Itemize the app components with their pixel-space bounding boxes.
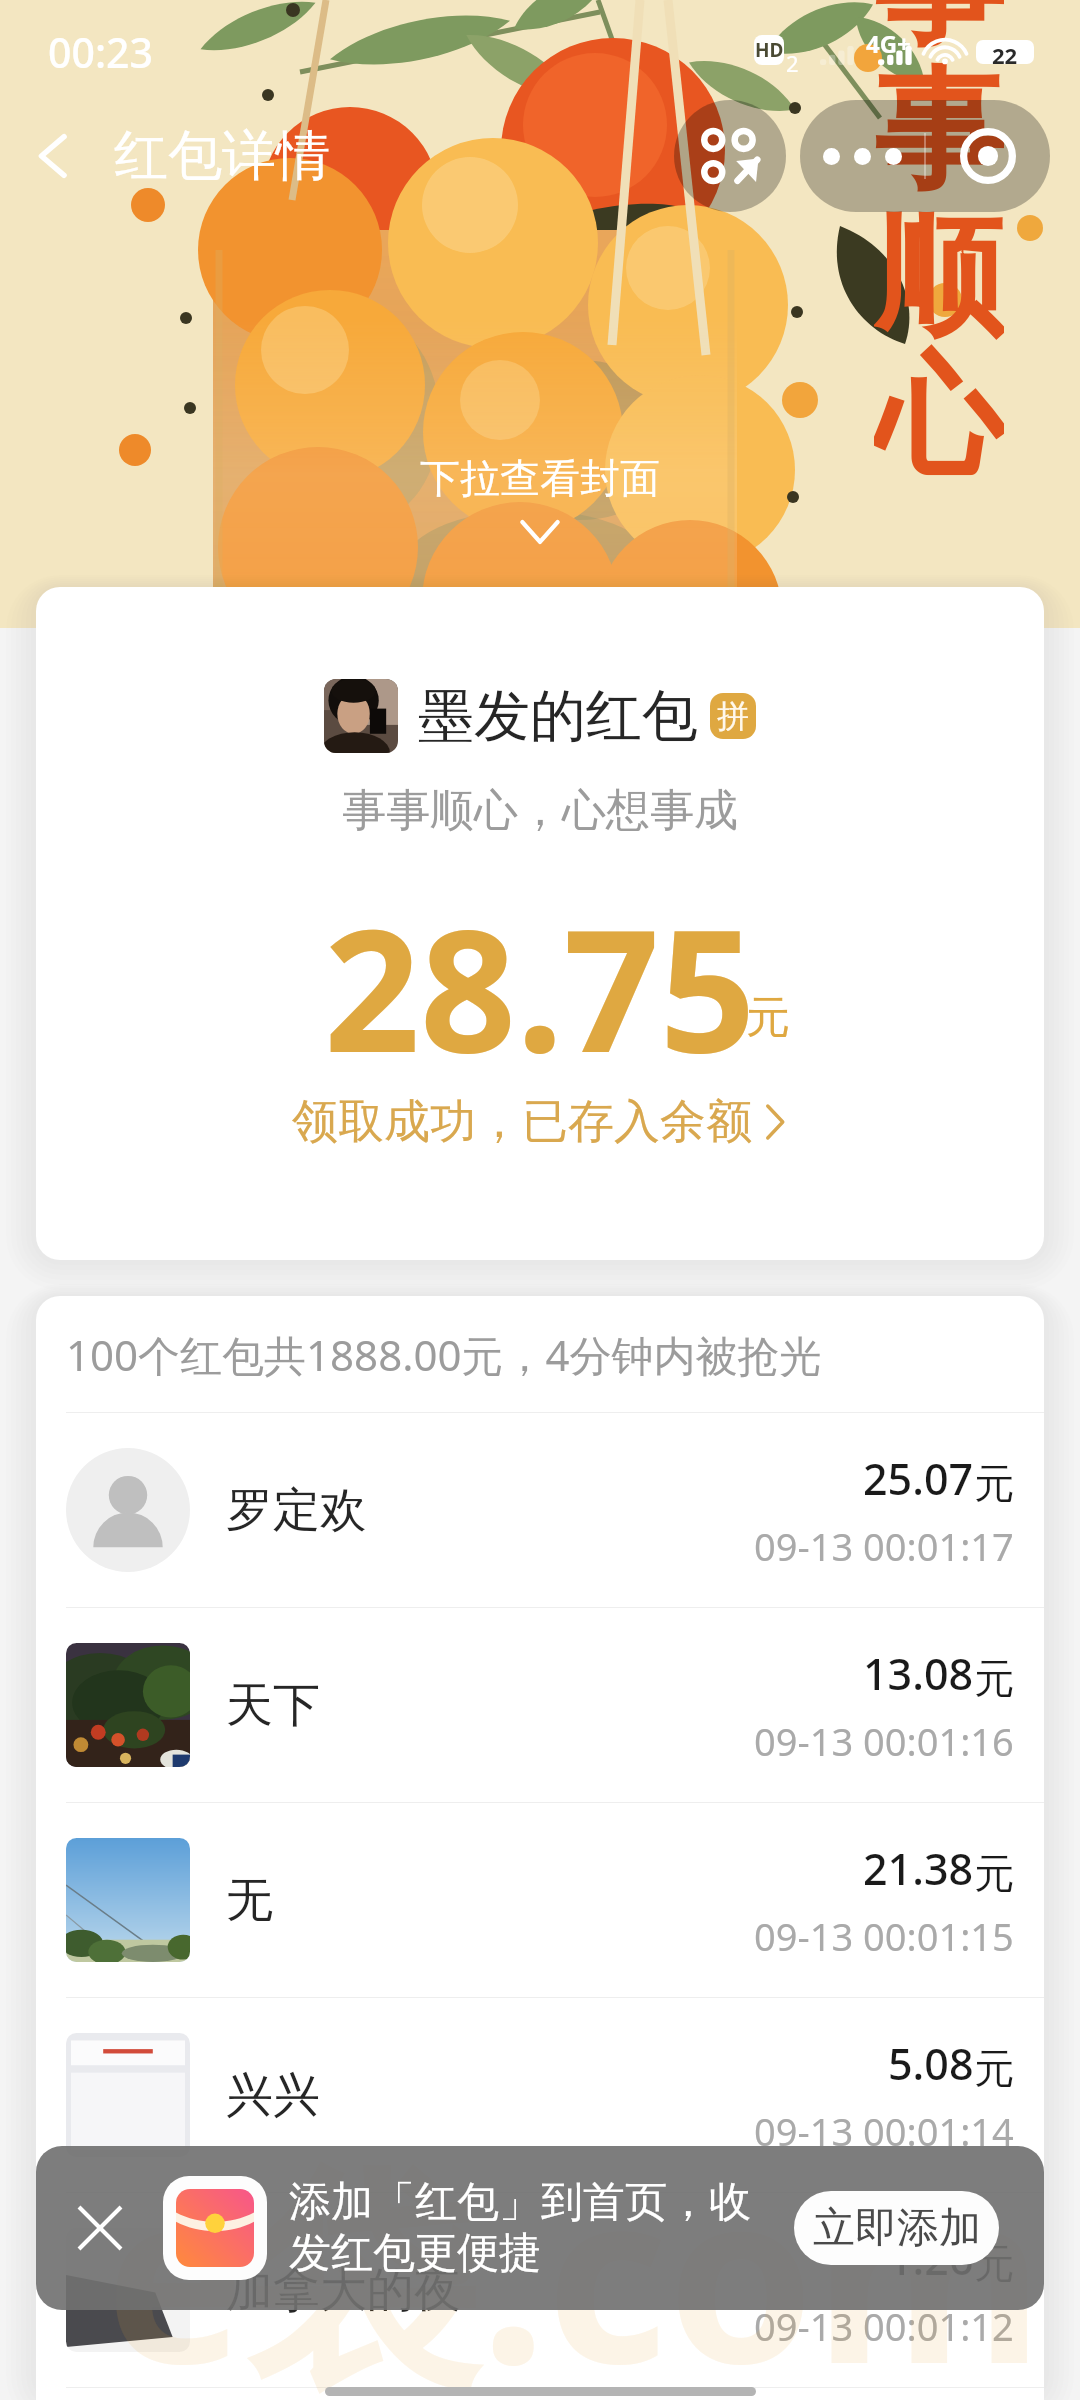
- staticText: 元: [746, 990, 790, 1045]
- staticText: 25.07: [863, 1449, 974, 1508]
- button[interactable]: 兴兴: [36, 1998, 1044, 2192]
- button[interactable]: 领取成功，已存入余额: [292, 1093, 788, 1151]
- staticText: 09-13 00:01:16: [754, 1715, 1014, 1767]
- staticText: 添加「红包」到首页，收 发红包更便捷: [289, 2176, 790, 2280]
- staticText: 拼: [717, 696, 749, 736]
- staticText: 事: [874, 0, 1004, 50]
- staticText: 天下: [226, 1676, 754, 1735]
- staticText: 00:23: [48, 24, 153, 80]
- staticText: 元: [974, 1848, 1014, 1898]
- button[interactable]: Mini program: [674, 100, 786, 212]
- button[interactable]: 罗定欢: [36, 1413, 1044, 1607]
- staticText: 21.38: [863, 1839, 974, 1898]
- staticText: 罗定欢: [226, 1481, 754, 1540]
- button[interactable]: More: [800, 100, 924, 212]
- staticText: 墨发的红包: [418, 681, 698, 752]
- staticText: 09-13 00:01:12: [754, 2300, 1014, 2352]
- staticText: 2: [786, 48, 799, 78]
- staticText: 5.08: [888, 2034, 974, 2093]
- staticText: 红包详情: [114, 122, 330, 190]
- staticText: 立即添加: [813, 2202, 981, 2255]
- staticText: 兴兴: [226, 2066, 754, 2125]
- staticText: 顺: [874, 196, 1004, 340]
- button[interactable]: Back: [0, 102, 108, 210]
- button[interactable]: Dismiss: [36, 2146, 163, 2310]
- button[interactable]: Close: [926, 100, 1050, 212]
- staticText: 事: [874, 50, 1004, 194]
- button[interactable]: 无: [36, 1803, 1044, 1997]
- staticText: 09-13 00:01:17: [754, 1520, 1014, 1572]
- button[interactable]: 加拿大的夜: [36, 2193, 1044, 2387]
- staticText: 100个红包共1888.00元，4分钟内被抢光: [66, 1326, 822, 1383]
- button[interactable]: 下拉查看封面: [420, 453, 660, 503]
- staticText: e袋.com: [105, 2112, 1044, 2400]
- button[interactable]: 天下: [36, 1608, 1044, 1802]
- staticText: 4G+: [866, 27, 911, 60]
- staticText: 13.08: [863, 1644, 974, 1703]
- staticText: 09-13 00:01:14: [754, 2105, 1014, 2157]
- staticText: 元: [974, 2043, 1014, 2093]
- staticText: 无: [226, 1871, 754, 1930]
- staticText: HD: [755, 37, 784, 63]
- staticText: 09-13 00:01:15: [754, 1910, 1014, 1962]
- staticText: 元: [974, 1653, 1014, 1703]
- staticText: 元: [974, 2238, 1014, 2288]
- staticText: 心: [874, 336, 1004, 480]
- staticText: 22: [992, 40, 1018, 64]
- staticText: 1.26: [888, 2229, 974, 2288]
- staticText: 事事顺心，心想事成: [342, 783, 738, 838]
- button[interactable]: 立即添加: [794, 2191, 999, 2265]
- staticText: 元: [974, 1458, 1014, 1508]
- staticText: 28.75: [324, 872, 756, 1101]
- staticText: 领取成功，已存入余额: [292, 1093, 752, 1151]
- staticText: 加拿大的夜: [226, 2261, 754, 2320]
